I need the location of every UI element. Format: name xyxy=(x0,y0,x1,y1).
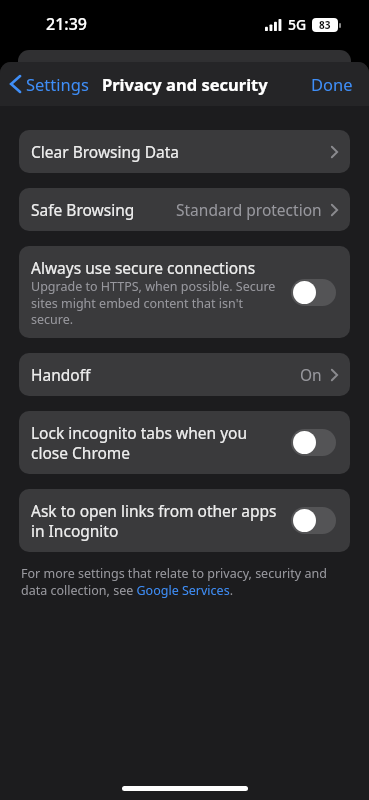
other: Open xyxy=(331,204,338,216)
button[interactable]: Done xyxy=(295,65,369,103)
button[interactable]: Ask to open links from other apps in Inc… xyxy=(19,489,350,552)
button[interactable]: Toggle xyxy=(291,279,336,306)
staticText: Ask to open links from other apps in Inc… xyxy=(31,500,277,541)
staticText: Settings xyxy=(26,73,89,95)
staticText: Safe Browsing xyxy=(31,199,135,220)
staticText: 83 xyxy=(319,18,331,32)
staticText: Always use secure connections xyxy=(31,257,256,278)
staticText: On xyxy=(300,364,322,385)
staticText: Lock incognito tabs when you close Chrom… xyxy=(31,422,248,463)
button[interactable]: Safe Browsing xyxy=(19,188,350,231)
staticText: Standard protection xyxy=(176,199,322,220)
button[interactable]: Handoff xyxy=(19,353,350,396)
staticText: Privacy and security xyxy=(102,73,268,95)
button[interactable]: Clear Browsing Data xyxy=(19,130,350,173)
staticText: Handoff xyxy=(31,364,91,385)
staticText: Clear Browsing Data xyxy=(31,141,179,162)
staticText: Upgrade to HTTPS, when possible. Secure … xyxy=(31,278,283,327)
button[interactable]: Settings xyxy=(0,67,97,101)
button[interactable]: Toggle xyxy=(291,429,336,456)
staticText: For more settings that relate to privacy… xyxy=(21,565,348,599)
button[interactable]: Lock incognito tabs when you close Chrom… xyxy=(19,411,350,474)
staticText: 5G xyxy=(288,15,307,34)
button[interactable]: Always use secure connections xyxy=(19,246,350,338)
other: Open xyxy=(331,369,338,381)
staticText: Done xyxy=(311,73,353,95)
staticText: 21:39 xyxy=(46,13,87,35)
other: Open xyxy=(331,146,338,158)
button[interactable]: Toggle xyxy=(291,507,336,534)
